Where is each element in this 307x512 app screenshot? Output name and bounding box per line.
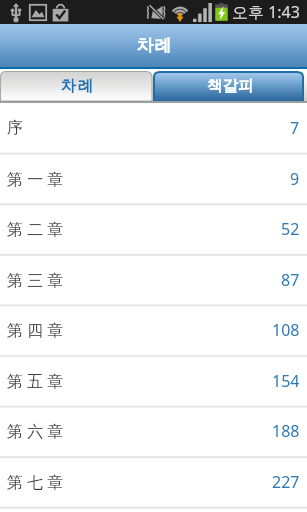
button[interactable]: 차례 xyxy=(0,71,153,101)
staticText: 9 xyxy=(290,168,300,190)
staticText: 227 xyxy=(272,471,300,493)
staticText: 第 二 章 xyxy=(7,218,64,240)
staticText: 52 xyxy=(281,218,300,240)
button[interactable]: 第 二 章 xyxy=(0,204,307,255)
staticText: 第 三 章 xyxy=(7,269,64,291)
staticText: 7 xyxy=(290,117,300,139)
staticText: 第 六 章 xyxy=(7,420,64,442)
staticText: 第 四 章 xyxy=(7,319,64,341)
staticText: 오후 1:43 xyxy=(232,1,300,23)
button[interactable]: 序 xyxy=(0,103,307,154)
staticText: 차례 xyxy=(136,35,172,56)
button[interactable]: 第 七 章 xyxy=(0,457,307,508)
button[interactable]: 第 六 章 xyxy=(0,406,307,457)
staticText: 차례 xyxy=(60,76,94,96)
staticText: 第 一 章 xyxy=(7,168,64,190)
staticText: 87 xyxy=(281,269,300,291)
button[interactable]: 책갈피 xyxy=(153,71,307,101)
staticText: 154 xyxy=(272,370,300,392)
button[interactable]: 第 五 章 xyxy=(0,356,307,407)
button[interactable]: 第 一 章 xyxy=(0,154,307,205)
staticText: 第 五 章 xyxy=(7,370,64,392)
staticText: 序 xyxy=(7,118,23,138)
staticText: 108 xyxy=(272,319,300,341)
staticText: 책갈피 xyxy=(207,76,254,96)
button[interactable]: 第 三 章 xyxy=(0,255,307,306)
staticText: 第 七 章 xyxy=(7,471,64,493)
staticText: 188 xyxy=(272,420,300,442)
button[interactable]: 第 四 章 xyxy=(0,305,307,356)
